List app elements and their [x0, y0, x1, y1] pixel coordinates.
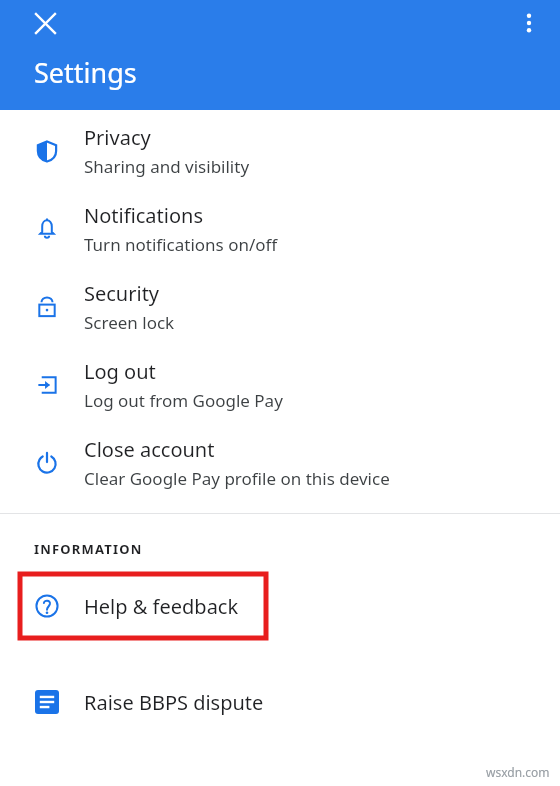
button[interactable]: Log out [0, 334, 560, 412]
button[interactable]: Security [0, 256, 560, 334]
staticText: Log out from Google Pay [84, 389, 283, 412]
staticText: Screen lock [84, 311, 175, 334]
button[interactable]: Notifications [0, 178, 560, 256]
staticText: Notifications [84, 202, 203, 229]
button[interactable]: Close [25, 3, 65, 43]
button[interactable]: Raise BBPS dispute [0, 674, 560, 730]
staticText: wsxdn.com [486, 764, 550, 780]
staticText: Sharing and visibility [84, 155, 250, 178]
staticText: Clear Google Pay profile on this device [84, 467, 390, 490]
staticText: INFORMATION [34, 540, 143, 558]
staticText: Close account [84, 436, 215, 463]
button[interactable]: More options [509, 3, 549, 43]
button[interactable]: Privacy [0, 110, 560, 178]
button[interactable]: Close account [0, 412, 560, 490]
staticText: Help & feedback [84, 593, 239, 620]
staticText: Privacy [84, 124, 151, 151]
staticText: Turn notifications on/off [84, 233, 278, 256]
staticText: Raise BBPS dispute [84, 689, 264, 716]
staticText: Settings [34, 54, 137, 91]
staticText: Security [84, 280, 160, 307]
button[interactable]: Help & feedback [0, 574, 560, 638]
staticText: Log out [84, 358, 156, 385]
